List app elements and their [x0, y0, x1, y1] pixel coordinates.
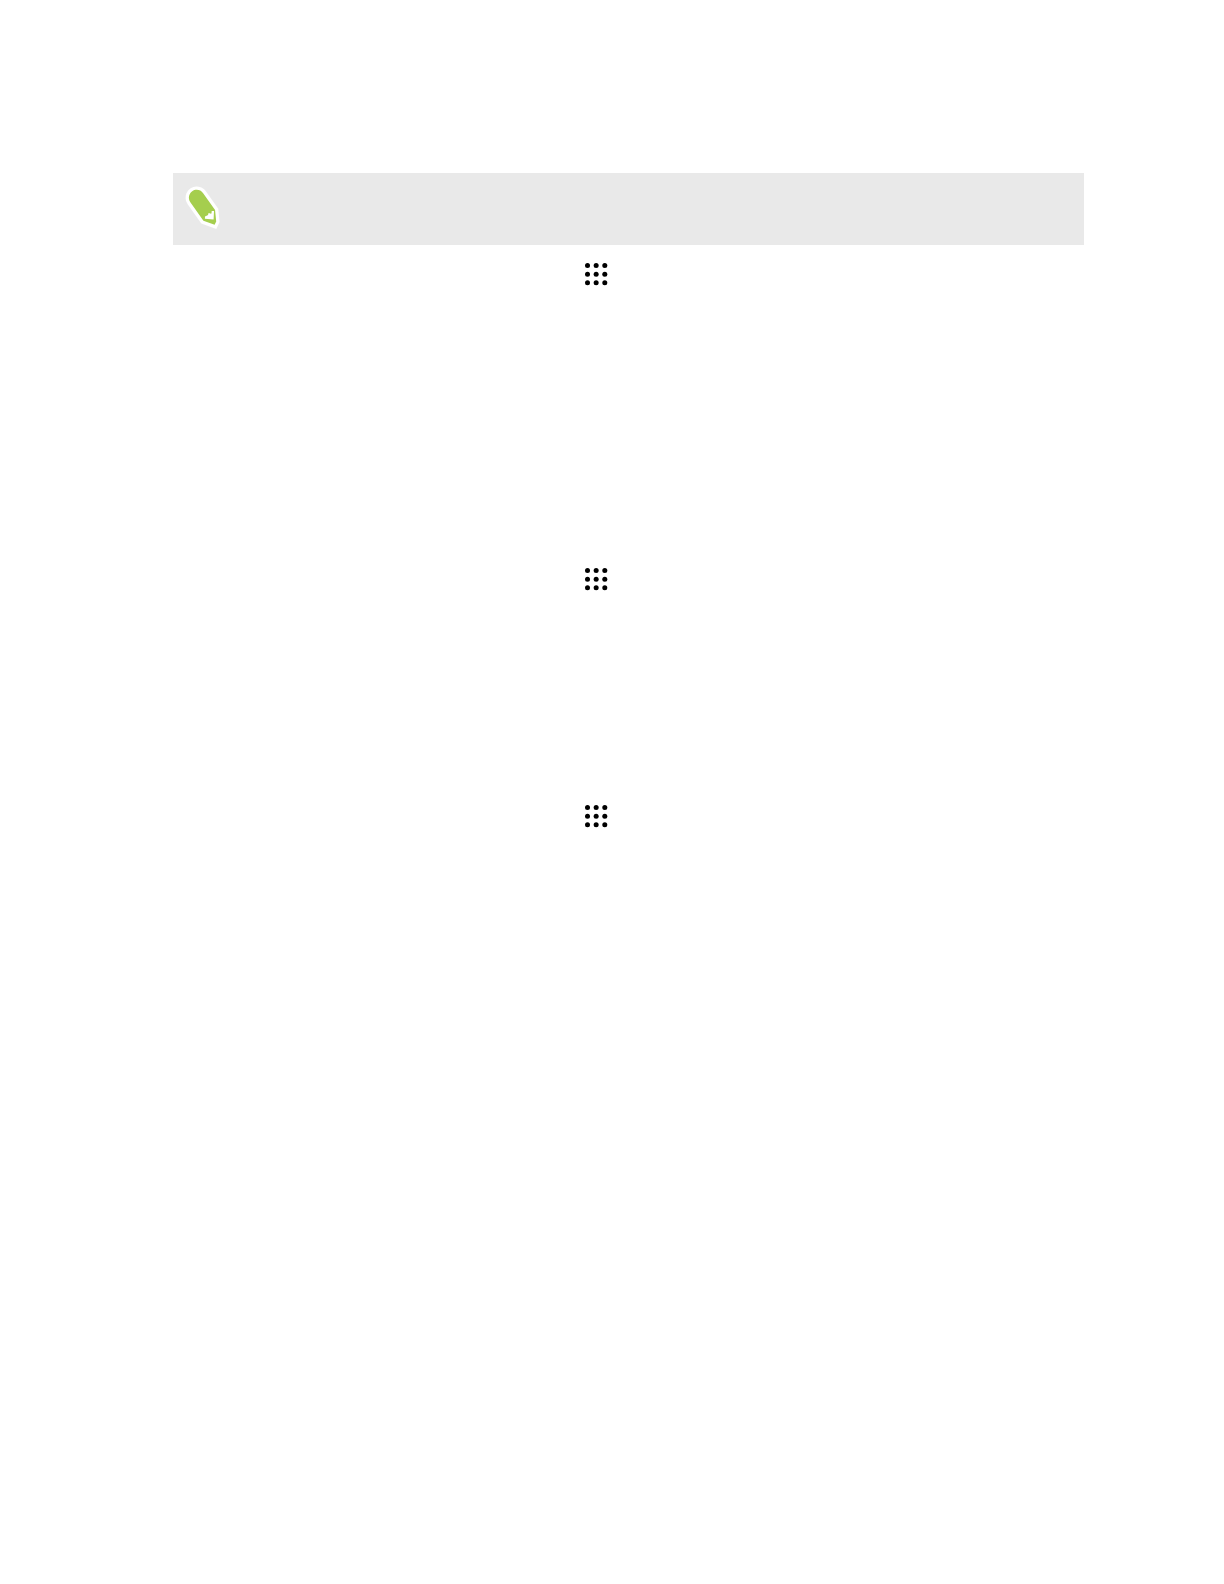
button[interactable]: Edit note: [181, 181, 237, 237]
button[interactable]: Edit note: [173, 173, 1084, 245]
button[interactable]: All apps: [583, 803, 610, 830]
button[interactable]: All apps: [583, 261, 610, 288]
button[interactable]: All apps: [583, 566, 610, 593]
